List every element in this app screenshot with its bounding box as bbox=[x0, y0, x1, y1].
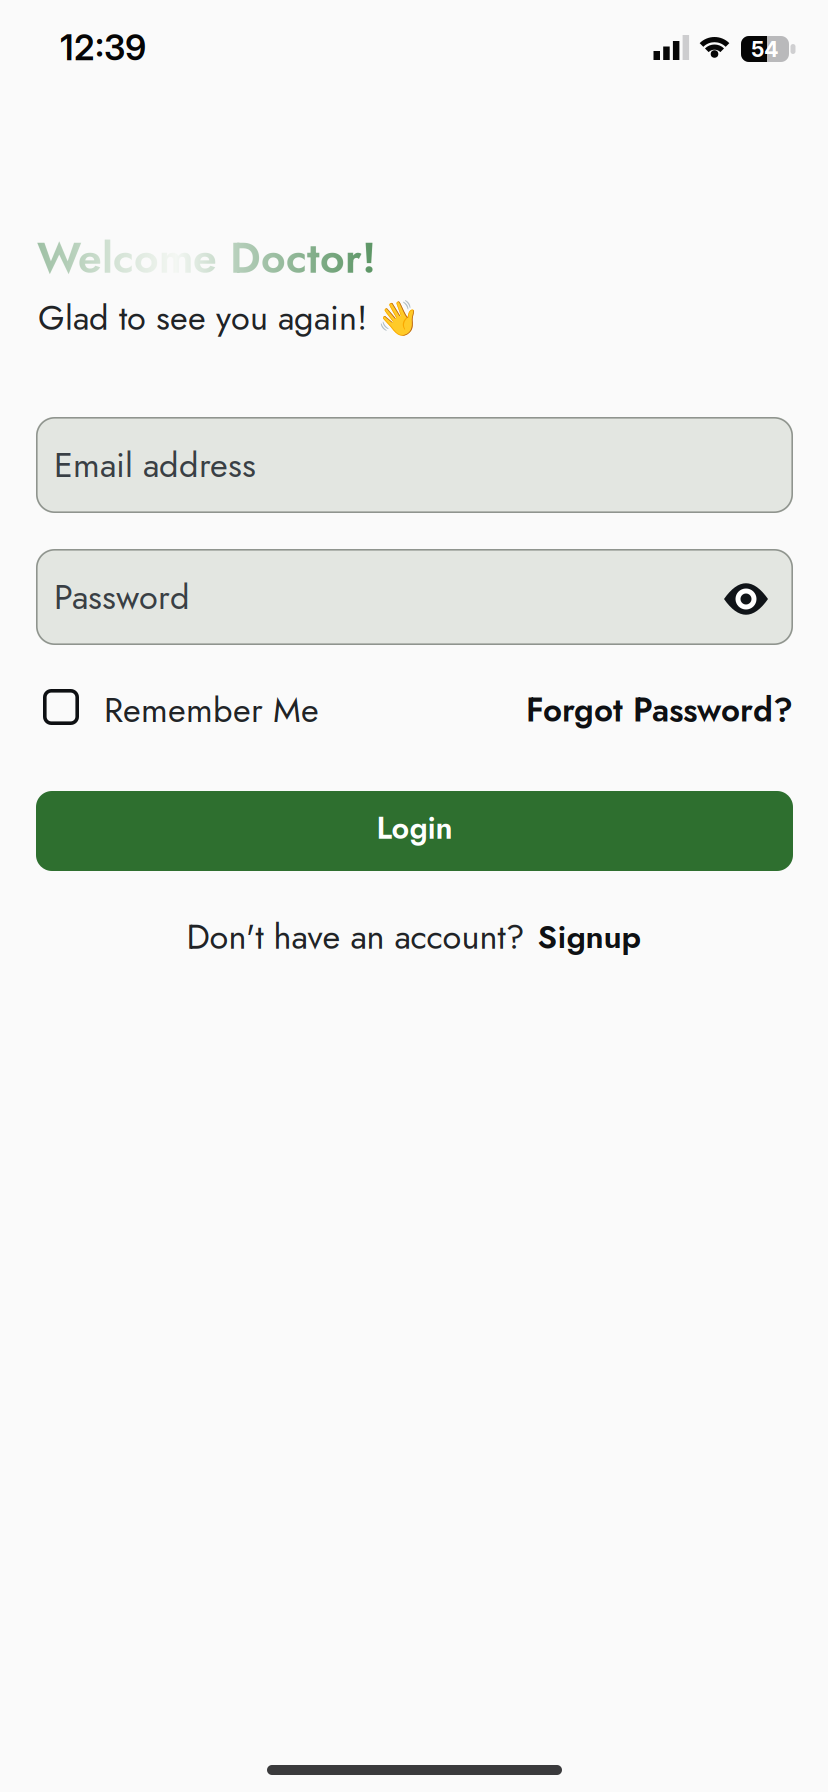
staticText: Signup bbox=[537, 913, 641, 960]
staticText: Remember Me bbox=[104, 685, 319, 735]
button[interactable]: Forgot Password? bbox=[526, 683, 793, 731]
staticText: Email address bbox=[54, 440, 256, 490]
staticText: Glad to see you again! 👋 bbox=[38, 293, 420, 342]
button[interactable]: Email address bbox=[36, 417, 793, 513]
staticText: Login bbox=[376, 806, 452, 850]
staticText: Don't have an account? bbox=[186, 912, 524, 961]
staticText: Welcome Doctor! bbox=[37, 227, 376, 289]
staticText: 54 bbox=[751, 36, 779, 62]
button[interactable]: Remember Me bbox=[36, 682, 319, 732]
button[interactable]: Show password bbox=[724, 582, 793, 612]
button[interactable]: Signup bbox=[537, 913, 641, 960]
staticText: 12:39 bbox=[60, 27, 146, 69]
button[interactable]: Login bbox=[36, 791, 793, 871]
button[interactable]: Password bbox=[36, 549, 793, 645]
staticText: Password bbox=[54, 572, 190, 622]
staticText: Forgot Password? bbox=[526, 686, 793, 734]
